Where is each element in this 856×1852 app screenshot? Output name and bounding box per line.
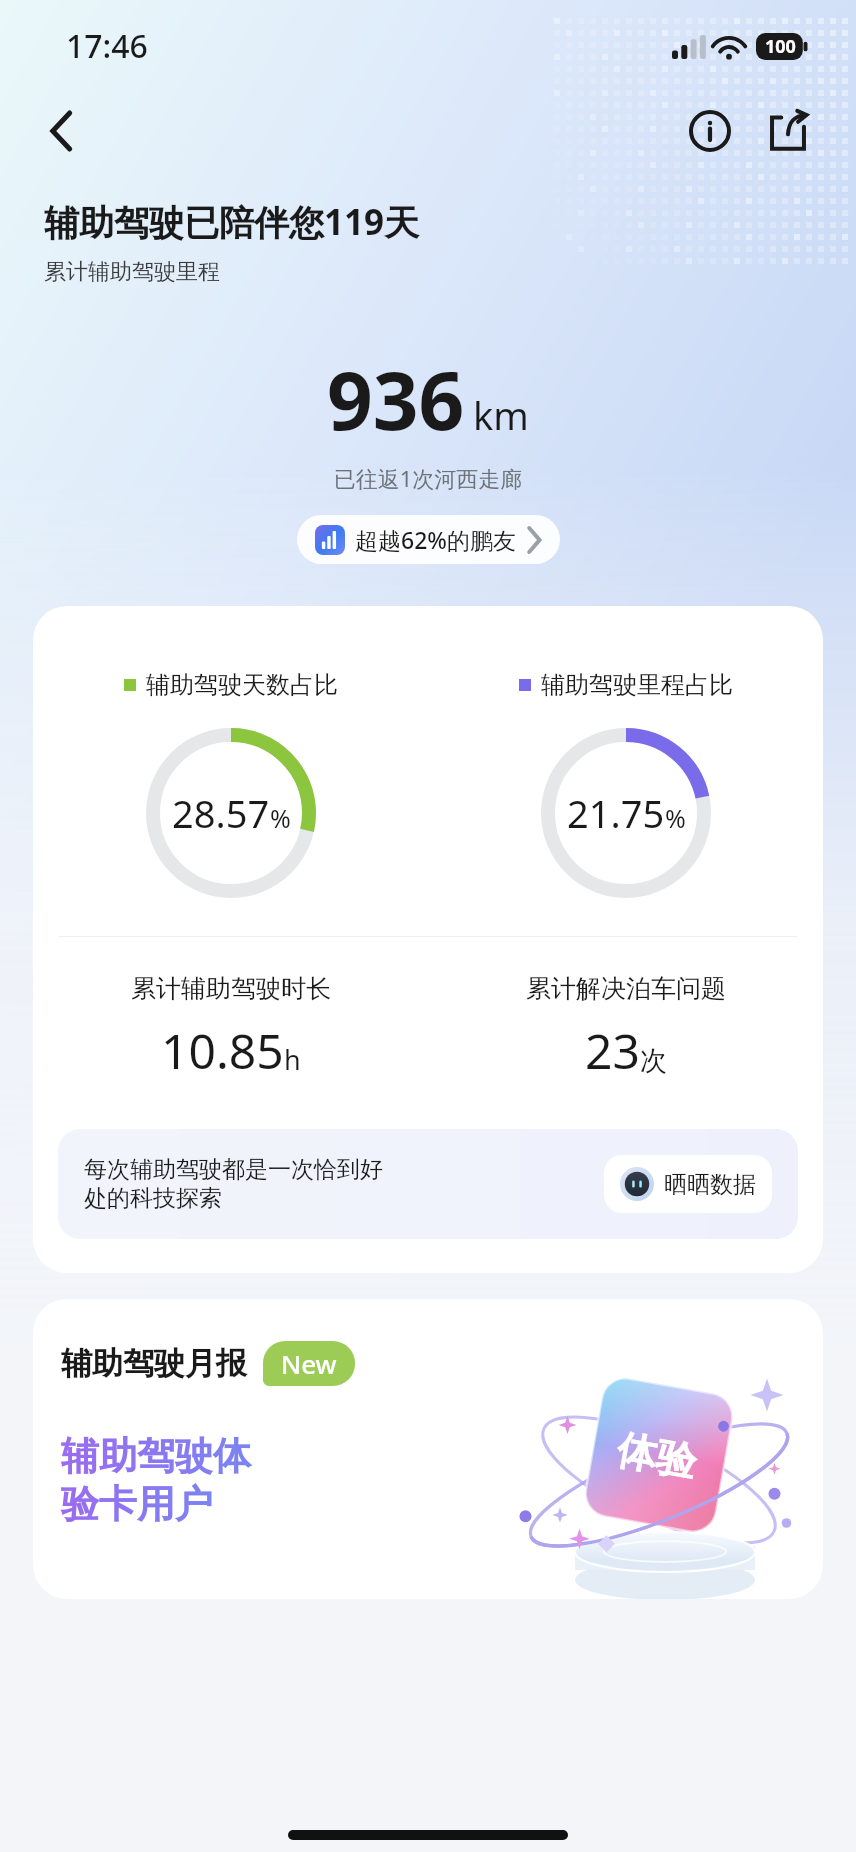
button[interactable]: 晒晒数据 bbox=[604, 1155, 772, 1213]
staticText: New bbox=[281, 1346, 337, 1381]
staticText: 处的科技探索 bbox=[84, 1184, 222, 1213]
staticText: km bbox=[473, 389, 529, 441]
button[interactable]: Info bbox=[682, 103, 738, 159]
button[interactable]: Share bbox=[760, 103, 816, 159]
staticText: 辅助驾驶月报 bbox=[61, 1344, 247, 1383]
staticText: h bbox=[284, 1041, 301, 1078]
staticText: 晒晒数据 bbox=[664, 1170, 756, 1199]
button[interactable]: 体验 bbox=[33, 1299, 823, 1599]
staticText: 23 bbox=[585, 1018, 640, 1083]
staticText: 辅助驾驶里程占比 bbox=[541, 670, 733, 700]
staticText: 次 bbox=[640, 1044, 667, 1078]
staticText: 累计辅助驾驶里程 bbox=[44, 258, 220, 286]
staticText: 超越62%的鹏友 bbox=[355, 524, 516, 555]
staticText: 辅助驾驶天数占比 bbox=[146, 670, 338, 700]
button[interactable]: 超越62%的鹏友 bbox=[297, 515, 560, 564]
staticText: 累计解决泊车问题 bbox=[526, 973, 726, 1004]
staticText: 辅助驾驶已陪伴您119天 bbox=[44, 198, 420, 246]
staticText: 936 bbox=[327, 344, 465, 453]
staticText: 28.57 bbox=[172, 787, 270, 839]
button[interactable]: Back bbox=[34, 103, 90, 159]
staticText: 100 bbox=[765, 34, 796, 59]
staticText: 已往返1次河西走廊 bbox=[0, 463, 856, 493]
staticText: 体验 bbox=[613, 1424, 701, 1487]
staticText: 每次辅助驾驶都是一次恰到好 bbox=[84, 1155, 383, 1184]
staticText: 验卡用户 bbox=[61, 1480, 213, 1528]
staticText: 10.85 bbox=[161, 1018, 284, 1083]
staticText: 累计辅助驾驶时长 bbox=[131, 973, 331, 1004]
staticText: % bbox=[665, 801, 686, 835]
staticText: 17:46 bbox=[66, 24, 148, 68]
staticText: 21.75 bbox=[567, 787, 665, 839]
staticText: 辅助驾驶体 bbox=[61, 1432, 251, 1480]
staticText: % bbox=[270, 801, 291, 835]
